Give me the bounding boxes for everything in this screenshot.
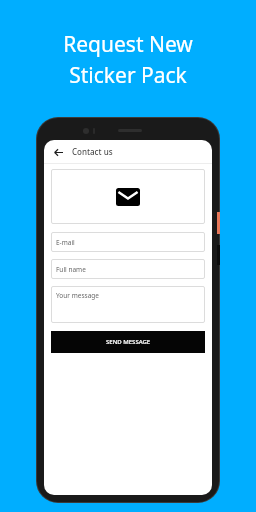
button[interactable]: Email [51,169,205,224]
staticText: E-mail [56,238,75,247]
button[interactable]: Full name [51,259,205,279]
staticText: Sticker Pack [69,61,187,90]
button[interactable]: Your message [51,286,205,323]
staticText: Your message [56,291,99,300]
staticText: Full name [56,265,86,274]
button[interactable]: Back [50,144,66,160]
staticText: Contact us [72,146,113,157]
staticText: Request New [63,30,193,59]
button[interactable]: E-mail [51,232,205,252]
button[interactable]: SEND MESSAGE [51,331,205,353]
staticText: SEND MESSAGE [106,338,151,346]
